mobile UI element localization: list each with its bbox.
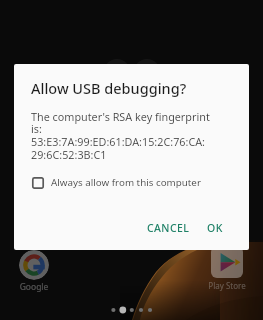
staticText: Google xyxy=(7,281,61,293)
staticText: Allow USB debugging? xyxy=(31,78,187,98)
staticText: Play Store xyxy=(200,280,254,291)
button[interactable]: CANCEL xyxy=(139,215,198,241)
button[interactable]: Play Store xyxy=(211,246,243,278)
button[interactable]: Always allow from this computer xyxy=(32,176,201,189)
staticText: CANCEL xyxy=(147,221,190,235)
staticText: The computer's RSA key fingerprint is: 5… xyxy=(31,109,210,162)
button[interactable]: Google xyxy=(19,250,49,280)
button[interactable]: OK xyxy=(199,215,231,241)
staticText: OK xyxy=(207,221,223,235)
staticText: Always allow from this computer xyxy=(51,176,201,189)
